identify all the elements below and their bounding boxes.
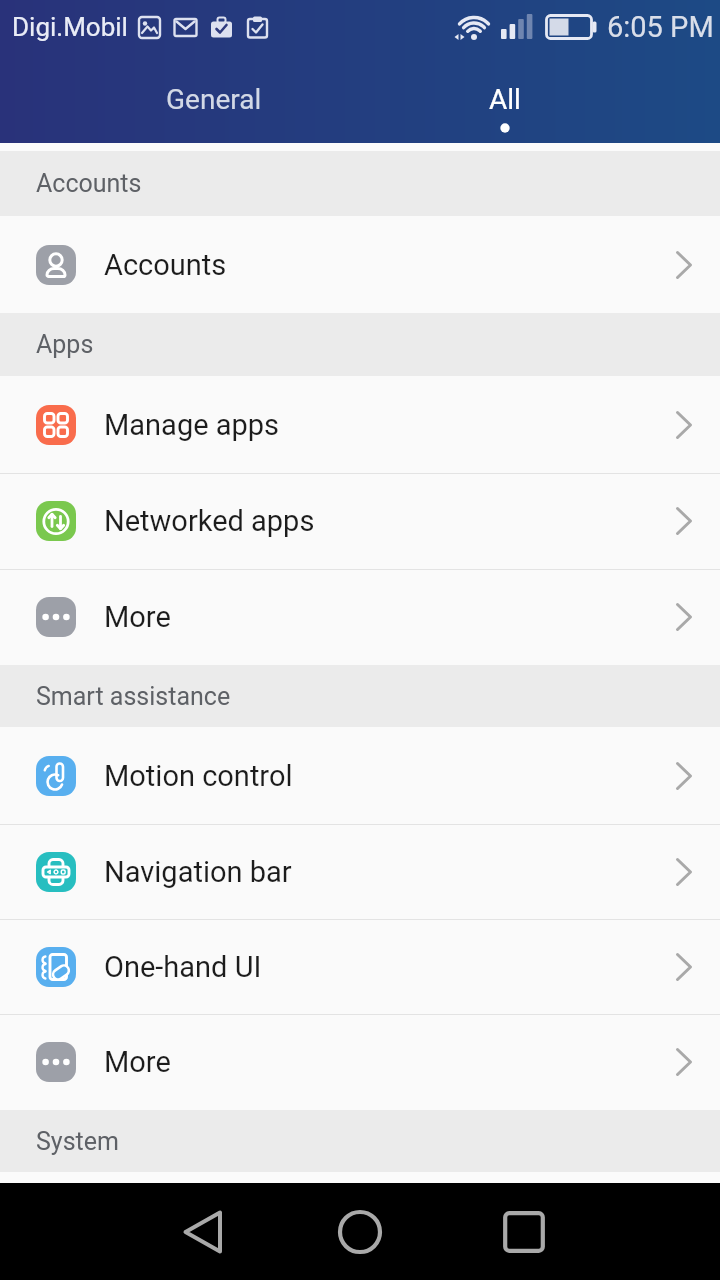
button[interactable]: Manage apps — [0, 376, 720, 473]
staticText: Navigation bar — [104, 855, 292, 889]
staticText: More — [104, 1045, 171, 1079]
button[interactable] — [310, 1183, 410, 1280]
button[interactable] — [153, 1183, 253, 1280]
staticText: Networked apps — [104, 504, 315, 538]
staticText: Apps — [36, 330, 94, 359]
staticText: One-hand UI — [104, 950, 262, 984]
button[interactable] — [474, 1183, 574, 1280]
staticText: Accounts — [104, 248, 227, 282]
staticText: Accounts — [36, 169, 142, 198]
staticText: Smart assistance — [36, 682, 231, 711]
staticText: More — [104, 600, 171, 634]
button[interactable]: General — [134, 76, 294, 122]
button[interactable]: Networked apps — [0, 473, 720, 569]
staticText: Manage apps — [104, 408, 280, 442]
button[interactable]: Accounts — [0, 216, 720, 313]
staticText: Motion control — [104, 759, 293, 793]
staticText: Digi.Mobil — [12, 12, 128, 42]
staticText: System — [36, 1127, 119, 1156]
button[interactable]: One-hand UI — [0, 919, 720, 1014]
button[interactable]: More — [0, 1014, 720, 1110]
button[interactable]: Motion control — [0, 727, 720, 824]
staticText: 6:05 PM — [607, 10, 714, 44]
button[interactable]: More — [0, 569, 720, 665]
button[interactable]: Navigation bar — [0, 824, 720, 919]
staticText: All — [489, 83, 521, 116]
button[interactable]: All — [425, 76, 585, 122]
staticText: General — [166, 83, 262, 116]
